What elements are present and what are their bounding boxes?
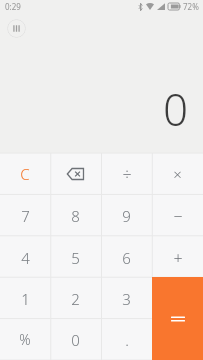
button[interactable]: Equals	[152, 277, 203, 360]
staticText: 2	[71, 289, 80, 309]
button[interactable]: 5	[50, 237, 101, 278]
button[interactable]: .	[101, 319, 152, 360]
staticText: 4	[21, 248, 30, 268]
button[interactable]: 1	[0, 278, 50, 319]
staticText: 0:29	[5, 1, 21, 12]
button[interactable]: %	[0, 319, 50, 360]
staticText: 8	[71, 206, 80, 226]
staticText: 9	[122, 206, 131, 226]
staticText: 0	[71, 330, 80, 350]
button[interactable]: ×	[152, 153, 203, 195]
staticText: 6	[122, 248, 131, 268]
button[interactable]: +	[152, 237, 203, 278]
button[interactable]: ÷	[101, 153, 152, 195]
button[interactable]: 4	[0, 237, 50, 278]
staticText: 7	[21, 206, 30, 226]
staticText: +	[173, 247, 183, 269]
staticText: −	[173, 205, 183, 227]
staticText: %	[19, 330, 31, 349]
button[interactable]: Menu	[7, 19, 26, 38]
button[interactable]: 7	[0, 195, 50, 237]
button[interactable]: 2	[50, 278, 101, 319]
staticText: .	[125, 330, 129, 350]
button[interactable]: 8	[50, 195, 101, 237]
button[interactable]: 6	[101, 237, 152, 278]
button[interactable]: 3	[101, 278, 152, 319]
staticText: 5	[71, 248, 80, 268]
button[interactable]: Backspace	[50, 153, 101, 195]
staticText: C	[20, 164, 30, 184]
staticText: 72%	[183, 1, 199, 12]
staticText: 1	[21, 289, 30, 309]
button[interactable]: 9	[101, 195, 152, 237]
staticText: ×	[173, 164, 182, 184]
staticText: 0	[163, 79, 189, 139]
staticText: ÷	[122, 163, 132, 185]
button[interactable]: −	[152, 195, 203, 237]
button[interactable]: C	[0, 153, 50, 195]
staticText: 3	[122, 289, 131, 309]
button[interactable]: 0	[50, 319, 101, 360]
